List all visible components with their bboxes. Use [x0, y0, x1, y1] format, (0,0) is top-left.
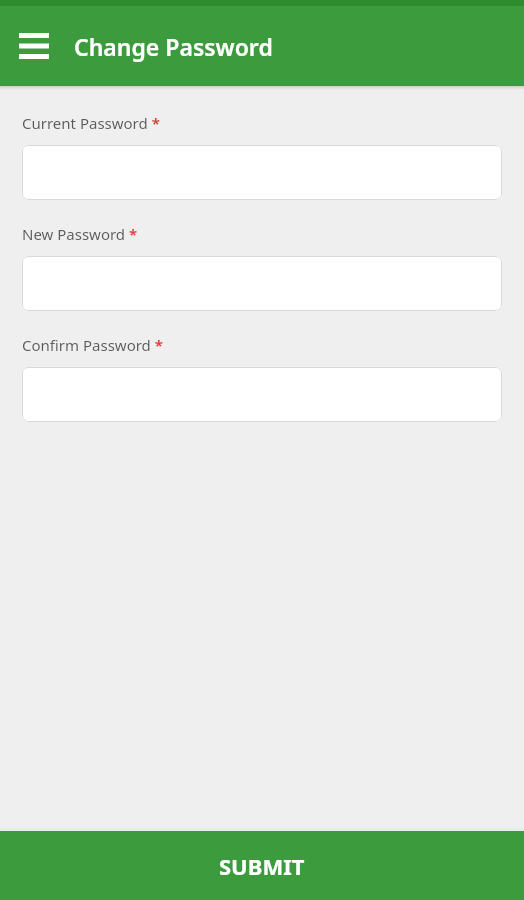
button[interactable]: Password input	[22, 145, 502, 200]
button[interactable]: Open navigation menu	[6, 18, 62, 74]
button[interactable]: Password input	[22, 256, 502, 311]
staticText: SUBMIT	[219, 851, 305, 881]
staticText: Change Password	[74, 31, 273, 62]
staticText: Confirm Password *	[22, 335, 163, 355]
button[interactable]: SUBMIT	[0, 831, 524, 900]
staticText: Current Password *	[22, 113, 160, 133]
button[interactable]: Password input	[22, 367, 502, 422]
staticText: New Password *	[22, 224, 138, 244]
